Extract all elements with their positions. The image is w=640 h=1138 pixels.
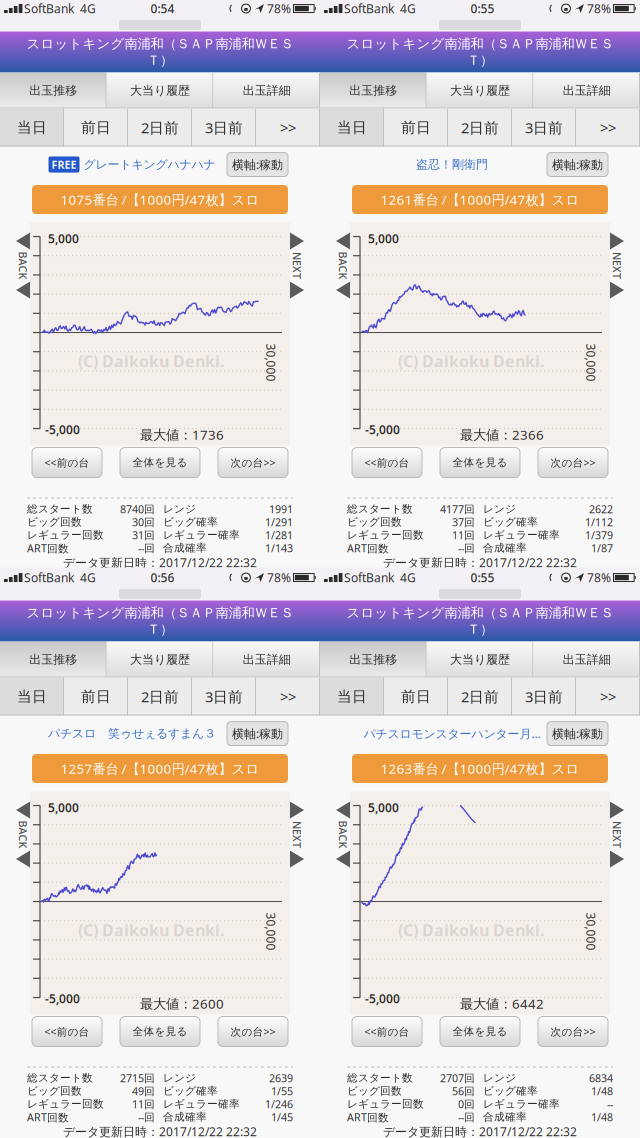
button[interactable]: <<前の台 xyxy=(32,447,102,477)
staticText: -5,000 xyxy=(365,990,400,1006)
button[interactable]: 前日 xyxy=(64,108,128,146)
button[interactable]: 前日 xyxy=(384,677,448,715)
staticText: 30回 xyxy=(132,515,155,529)
button[interactable]: <<前の台 xyxy=(32,1016,102,1046)
button[interactable]: 2日前 xyxy=(128,108,192,146)
button[interactable]: >> xyxy=(256,677,320,715)
button[interactable]: Next machine xyxy=(290,222,320,445)
button[interactable]: 3日前 xyxy=(192,677,256,715)
button[interactable]: 出玉詳細 xyxy=(213,72,320,108)
staticText: ART回数 xyxy=(27,1110,69,1124)
button[interactable]: 前日 xyxy=(384,108,448,146)
staticText: >> xyxy=(600,687,616,706)
staticText: 49回 xyxy=(132,1084,155,1098)
button[interactable]: Previous machine xyxy=(0,222,30,445)
staticText: NEXT xyxy=(603,258,630,273)
button[interactable]: >> xyxy=(576,108,640,146)
button[interactable]: 1263番台 /【1000円/47枚】スロ xyxy=(320,757,640,786)
button[interactable]: Previous machine xyxy=(320,791,350,1014)
staticText: 4G xyxy=(394,570,416,585)
button[interactable]: 次の台>> xyxy=(538,447,608,477)
button[interactable]: 次の台>> xyxy=(218,447,288,477)
button[interactable]: 大当り履歴 xyxy=(427,641,533,677)
button[interactable]: 出玉推移 xyxy=(0,72,107,108)
staticText: 全体を見る xyxy=(452,1025,507,1038)
staticText: 出玉推移 xyxy=(349,83,397,98)
button[interactable]: 出玉推移 xyxy=(320,641,427,677)
staticText: 5,000 xyxy=(48,230,79,246)
button[interactable]: Previous machine xyxy=(0,791,30,1014)
button[interactable]: 1261番台 /【1000円/47枚】スロ xyxy=(320,188,640,217)
button[interactable]: 出玉推移 xyxy=(320,72,427,108)
button[interactable]: 前日 xyxy=(64,677,128,715)
staticText: >> xyxy=(280,118,296,137)
button[interactable]: 2日前 xyxy=(448,108,512,146)
button[interactable]: 当日 xyxy=(0,677,64,715)
button[interactable]: 次の台>> xyxy=(538,1016,608,1046)
button[interactable]: Next machine xyxy=(610,222,640,445)
button[interactable]: 横軸:稼動 xyxy=(227,722,288,745)
staticText: 30,000 xyxy=(572,355,610,370)
button[interactable]: 全体を見る xyxy=(440,447,520,477)
staticText: 出玉推移 xyxy=(29,83,77,98)
button[interactable]: 横軸:稼動 xyxy=(547,722,608,745)
button[interactable]: Previous machine xyxy=(320,222,350,445)
staticText: (C) Daikoku Denki. xyxy=(78,350,224,372)
staticText: 56回 xyxy=(452,1084,475,1098)
staticText: データ更新日時：2017/12/22 22:32 xyxy=(63,554,257,570)
staticText: 最大値：2366 xyxy=(460,426,544,443)
button[interactable]: >> xyxy=(576,677,640,715)
staticText: 5,000 xyxy=(368,799,399,815)
button[interactable]: >> xyxy=(256,108,320,146)
button[interactable]: 出玉詳細 xyxy=(533,72,640,108)
staticText: 2622 xyxy=(589,502,613,516)
button[interactable]: Next machine xyxy=(290,791,320,1014)
button[interactable]: 当日 xyxy=(320,677,384,715)
button[interactable]: 横軸:稼動 xyxy=(227,153,288,176)
button[interactable]: 横軸:稼動 xyxy=(547,153,608,176)
button[interactable]: 大当り履歴 xyxy=(427,72,533,108)
staticText: 6834 xyxy=(589,1071,613,1085)
button[interactable]: 当日 xyxy=(0,108,64,146)
staticText: BACK xyxy=(329,258,357,273)
staticText: 3日前 xyxy=(205,118,243,137)
staticText: 1/87 xyxy=(591,541,613,555)
staticText: Ｔ） xyxy=(467,52,493,68)
button[interactable]: 出玉詳細 xyxy=(533,641,640,677)
staticText: ビッグ回数 xyxy=(27,1084,82,1098)
staticText: 2707回 xyxy=(440,1071,475,1085)
button[interactable]: 全体を見る xyxy=(120,447,200,477)
button[interactable]: 1257番台 /【1000円/47枚】スロ xyxy=(0,757,320,786)
staticText: NEXT xyxy=(603,827,630,842)
staticText: 次の台>> xyxy=(550,455,595,470)
button[interactable]: 大当り履歴 xyxy=(107,641,213,677)
button[interactable]: 全体を見る xyxy=(120,1016,200,1046)
staticText: (C) Daikoku Denki. xyxy=(78,919,224,941)
button[interactable]: 次の台>> xyxy=(218,1016,288,1046)
staticText: 1/55 xyxy=(271,1084,293,1098)
staticText: 前日 xyxy=(81,687,111,705)
staticText: <<前の台 xyxy=(364,1024,409,1039)
button[interactable]: 3日前 xyxy=(512,108,576,146)
staticText: データ更新日時：2017/12/22 22:32 xyxy=(383,1123,577,1138)
button[interactable]: 出玉詳細 xyxy=(213,641,320,677)
staticText: 0:55 xyxy=(470,1,494,16)
button[interactable]: 1075番台 /【1000円/47枚】スロ xyxy=(0,188,320,217)
staticText: -5,000 xyxy=(45,421,80,437)
staticText: 当日 xyxy=(17,118,47,136)
button[interactable]: 3日前 xyxy=(512,677,576,715)
button[interactable]: <<前の台 xyxy=(352,1016,422,1046)
button[interactable]: Next machine xyxy=(610,791,640,1014)
staticText: >> xyxy=(600,118,616,137)
button[interactable]: 2日前 xyxy=(448,677,512,715)
button[interactable]: 全体を見る xyxy=(440,1016,520,1046)
button[interactable]: 大当り履歴 xyxy=(107,72,213,108)
button[interactable]: <<前の台 xyxy=(352,447,422,477)
button[interactable]: 3日前 xyxy=(192,108,256,146)
button[interactable]: 当日 xyxy=(320,108,384,146)
staticText: >> xyxy=(280,687,296,706)
button[interactable]: 2日前 xyxy=(128,677,192,715)
staticText: 78% xyxy=(264,1,291,16)
staticText: 最大値：1736 xyxy=(140,426,224,443)
button[interactable]: 出玉推移 xyxy=(0,641,107,677)
